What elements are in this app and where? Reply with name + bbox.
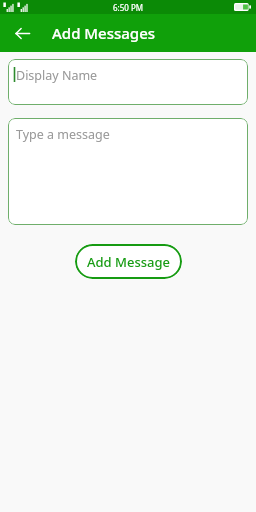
- button[interactable]: Add Message: [75, 244, 182, 279]
- staticText: 6:50 PM: [113, 2, 144, 13]
- staticText: Display Name: [16, 67, 98, 84]
- staticText: Type a message: [16, 126, 110, 143]
- button[interactable]: Type a message: [8, 118, 248, 225]
- button[interactable]: Back: [6, 17, 38, 49]
- staticText: Add Messages: [52, 23, 156, 43]
- button[interactable]: Display Name: [8, 59, 248, 105]
- staticText: Add Message: [87, 253, 171, 271]
